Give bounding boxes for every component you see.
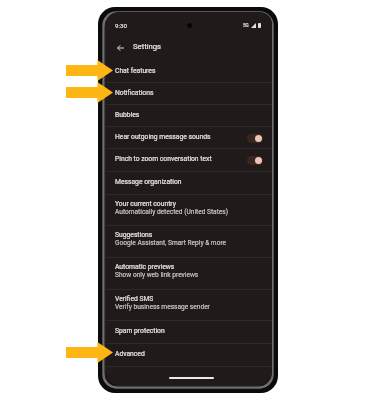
staticText: Settings <box>133 42 162 51</box>
button[interactable]: Notifications <box>106 83 272 105</box>
staticText: Automatic previews <box>115 263 175 271</box>
staticText: 5G <box>243 23 249 28</box>
other: Annotation arrow <box>66 342 113 363</box>
staticText: Chat features <box>115 67 156 75</box>
staticText: Show only web link previews <box>115 271 199 279</box>
staticText: Verify business message sender <box>115 303 210 311</box>
staticText: Spam protection <box>115 327 165 335</box>
button[interactable]: Back <box>114 42 126 54</box>
button[interactable]: Bubbles <box>106 105 272 127</box>
button[interactable]: Verified SMS <box>106 290 272 321</box>
button[interactable]: Message organization <box>106 172 272 195</box>
button[interactable]: Chat features <box>106 61 272 83</box>
staticText: Bubbles <box>115 111 140 119</box>
staticText: 9:30 <box>115 22 127 29</box>
button[interactable]: Advanced <box>106 344 272 367</box>
staticText: Verified SMS <box>115 295 154 303</box>
staticText: Your current country <box>115 200 176 208</box>
button[interactable]: Spam protection <box>106 321 272 344</box>
button[interactable]: Your current country <box>106 195 272 226</box>
staticText: Google Assistant, Smart Reply & more <box>115 239 227 247</box>
staticText: Suggestions <box>115 231 153 239</box>
staticText: Hear outgoing message sounds <box>115 133 211 141</box>
button[interactable]: Toggle <box>247 156 263 165</box>
button[interactable]: Pinch to zoom conversation text <box>106 149 272 172</box>
staticText: Message organization <box>115 178 182 186</box>
button[interactable]: Suggestions <box>106 226 272 258</box>
button[interactable]: Automatic previews <box>106 258 272 290</box>
button[interactable]: Toggle <box>247 134 263 143</box>
button[interactable]: Hear outgoing message sounds <box>106 127 272 149</box>
other: Annotation arrow <box>66 82 113 103</box>
staticText: Advanced <box>115 350 145 358</box>
staticText: Notifications <box>115 89 154 97</box>
staticText: Pinch to zoom conversation text <box>115 155 212 163</box>
staticText: Automatically detected (United States) <box>115 208 229 216</box>
other: Annotation arrow <box>66 60 113 81</box>
